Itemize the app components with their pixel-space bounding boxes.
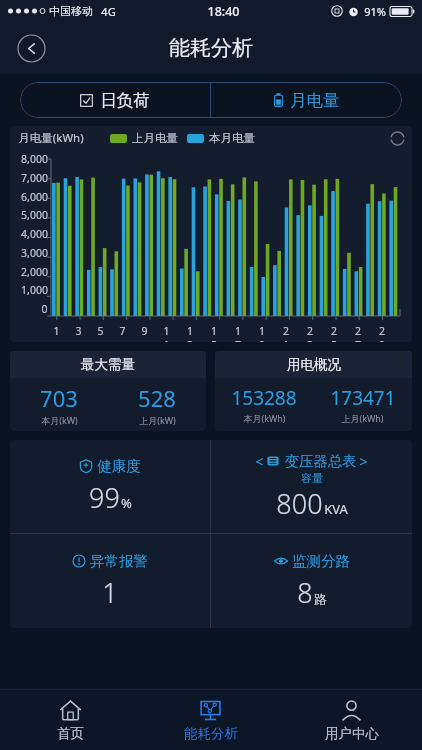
button[interactable]: Back: [17, 34, 46, 63]
button[interactable]: 健康度: [10, 440, 210, 533]
staticText: 月电量: [290, 90, 340, 111]
staticText: 91%: [364, 4, 386, 19]
staticText: 8: [297, 574, 313, 611]
staticText: 153288: [231, 385, 297, 411]
staticText: 19: [256, 324, 268, 342]
staticText: 能耗分析: [169, 35, 253, 61]
staticText: 4,000: [21, 227, 48, 241]
staticText: 13: [184, 324, 196, 342]
staticText: 29: [376, 324, 388, 342]
staticText: 能耗分析: [184, 725, 238, 742]
staticText: 173471: [330, 385, 396, 411]
staticText: 3: [75, 324, 82, 338]
staticText: 5: [97, 324, 104, 338]
staticText: 用户中心: [325, 725, 379, 742]
staticText: 7: [119, 324, 126, 338]
staticText: 监测分路: [292, 552, 350, 570]
staticText: 1,000: [21, 283, 48, 297]
staticText: 2,000: [21, 265, 48, 279]
staticText: 1: [102, 574, 118, 611]
button[interactable]: 日负荷: [20, 82, 210, 118]
staticText: 首页: [57, 725, 84, 742]
staticText: 容量: [301, 471, 323, 485]
staticText: 703: [40, 383, 78, 413]
staticText: 3,000: [21, 246, 48, 260]
button[interactable]: 用电概况: [215, 351, 412, 431]
button[interactable]: 用户中心: [281, 690, 422, 750]
staticText: 21: [280, 324, 292, 342]
button[interactable]: 首页: [0, 690, 140, 750]
staticText: 路: [314, 591, 327, 607]
staticText: 11: [161, 324, 172, 342]
button[interactable]: 月电量: [211, 82, 402, 118]
staticText: 528: [138, 383, 176, 413]
staticText: >: [359, 451, 368, 471]
staticText: 4G: [101, 4, 116, 19]
staticText: 15: [208, 324, 220, 342]
staticText: 上月电量: [132, 131, 178, 145]
staticText: 异常报警: [90, 552, 148, 570]
staticText: 18:40: [207, 3, 240, 20]
staticText: 月电量(kWh): [18, 130, 84, 146]
staticText: 本月电量: [209, 131, 255, 145]
staticText: 7,000: [21, 171, 48, 185]
staticText: 800: [276, 485, 323, 522]
staticText: 9: [141, 324, 148, 338]
staticText: 本月(kWh): [243, 412, 286, 424]
staticText: KVA: [324, 500, 348, 518]
staticText: 中国移动: [49, 4, 93, 18]
button[interactable]: 异常报警: [10, 534, 210, 628]
staticText: 5,000: [21, 208, 48, 222]
staticText: 6,000: [21, 190, 48, 204]
staticText: 23: [304, 324, 316, 342]
staticText: 99: [89, 479, 120, 516]
staticText: 27: [352, 324, 364, 342]
button[interactable]: 能耗分析: [140, 690, 281, 750]
button[interactable]: 监测分路: [211, 534, 412, 628]
staticText: 用电概况: [287, 356, 341, 373]
staticText: 日负荷: [100, 90, 150, 111]
staticText: %: [121, 494, 132, 512]
staticText: 最大需量: [81, 356, 135, 373]
staticText: 变压器总表: [284, 452, 357, 470]
staticText: 上月(kWh): [341, 412, 384, 424]
staticText: 本月(kW): [41, 414, 78, 426]
staticText: 健康度: [97, 457, 141, 475]
staticText: 0: [41, 302, 48, 316]
staticText: <: [255, 451, 264, 471]
staticText: 25: [328, 324, 340, 342]
staticText: 8,000: [21, 152, 48, 166]
button[interactable]: Refresh: [389, 130, 406, 147]
staticText: 1: [53, 324, 60, 338]
staticText: 上月(kW): [139, 414, 176, 426]
staticText: 17: [232, 324, 244, 342]
button[interactable]: 最大需量: [10, 351, 206, 431]
button[interactable]: <: [211, 440, 412, 533]
